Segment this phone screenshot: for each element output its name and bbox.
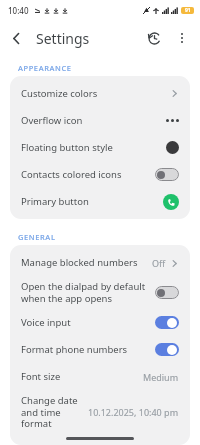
button[interactable]: Primary button — [10, 188, 190, 215]
staticText: Off — [152, 257, 166, 269]
staticText: 10.12.2025, 10:40 pm — [88, 406, 179, 418]
button[interactable]: Manage blocked numbers — [10, 249, 190, 276]
button[interactable]: Off — [155, 286, 179, 299]
button[interactable]: On — [155, 343, 179, 356]
button[interactable]: Customize colors — [10, 80, 190, 107]
button[interactable]: Off — [155, 168, 179, 181]
button[interactable]: Floating button style — [10, 134, 190, 161]
staticText: Change date and time format — [21, 394, 82, 430]
staticText: Contacts colored icons — [21, 168, 122, 181]
staticText: Customize colors — [21, 87, 98, 100]
button[interactable]: Language — [10, 434, 190, 441]
button[interactable]: Overflow icon — [10, 107, 190, 134]
staticText: Font size — [21, 370, 61, 383]
staticText: Settings — [36, 29, 90, 48]
staticText: Manage blocked numbers — [21, 256, 138, 269]
button[interactable]: Font size — [10, 363, 190, 390]
button[interactable]: Open the dialpad by default when the app… — [10, 276, 190, 309]
button[interactable]: Format phone numbers — [10, 336, 190, 363]
button[interactable]: Back — [0, 22, 32, 54]
button[interactable]: Contacts colored icons — [10, 161, 190, 188]
staticText: Open the dialpad by default when the app… — [21, 280, 146, 305]
staticText: 91 — [185, 7, 191, 14]
staticText: Floating button style — [21, 141, 113, 154]
staticText: 10:40 — [8, 5, 29, 16]
button[interactable]: Call history — [140, 24, 168, 52]
button[interactable]: Voice input — [10, 309, 190, 336]
staticText: Medium — [143, 371, 179, 383]
staticText: Primary button — [21, 195, 89, 208]
button[interactable]: On — [155, 316, 179, 329]
staticText: APPEARANCE — [18, 63, 72, 73]
staticText: Overflow icon — [21, 114, 83, 127]
staticText: Format phone numbers — [21, 343, 128, 356]
button[interactable]: Change date and time format — [10, 390, 190, 434]
staticText: GENERAL — [18, 232, 56, 242]
staticText: Voice input — [21, 316, 71, 329]
button[interactable]: More options — [168, 24, 196, 52]
